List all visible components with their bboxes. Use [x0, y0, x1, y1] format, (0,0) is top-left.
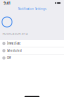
staticText: Immediate [7, 42, 21, 45]
button[interactable]: Immediate [0, 40, 64, 47]
button[interactable]: Off [0, 54, 64, 61]
button[interactable]: Scheduled [0, 47, 64, 54]
staticText: 9:41 [3, 0, 10, 6]
staticText: Notification Settings [18, 7, 46, 11]
button[interactable]: Notification Settings [0, 6, 64, 12]
staticText: Off [7, 56, 11, 60]
staticText: NOTIFICATION STYLE [2, 32, 27, 35]
staticText: Scheduled [7, 49, 22, 52]
